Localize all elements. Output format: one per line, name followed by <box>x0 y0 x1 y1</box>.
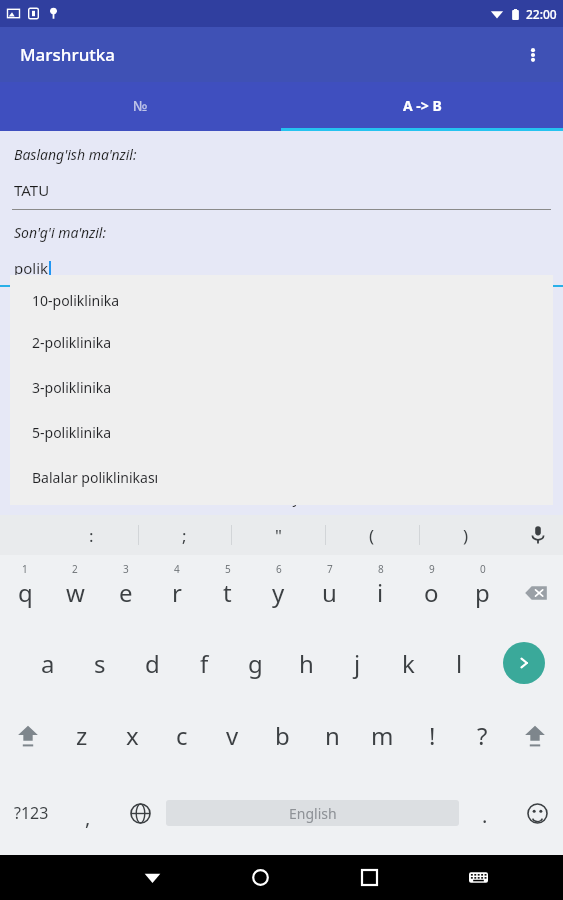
button[interactable]: d <box>126 627 178 699</box>
button[interactable]: Back <box>98 855 206 900</box>
staticText: b <box>275 719 290 752</box>
staticText: u <box>322 576 337 609</box>
staticText: ? <box>477 719 488 752</box>
staticText: x <box>126 719 139 752</box>
button[interactable]: № <box>0 82 281 128</box>
button[interactable]: f <box>178 627 230 699</box>
staticText: c <box>176 719 188 752</box>
staticText: k <box>402 647 415 680</box>
staticText: 0 <box>480 562 486 576</box>
staticText: Samanbay elatı <box>231 488 332 507</box>
button[interactable]: n <box>307 699 357 771</box>
staticText: 2 <box>72 562 78 576</box>
button[interactable]: ) <box>419 515 513 555</box>
staticText: o <box>424 576 439 609</box>
staticText: 10-poliklinika <box>32 291 120 310</box>
staticText: polik <box>14 258 49 278</box>
button[interactable]: 2 <box>50 555 100 627</box>
button[interactable]: g <box>230 627 281 699</box>
button[interactable]: A -> B <box>281 82 563 128</box>
staticText: ! <box>429 719 436 752</box>
button[interactable]: ?123 <box>0 771 62 855</box>
button[interactable]: l <box>434 627 485 699</box>
button[interactable]: ; <box>138 515 231 555</box>
button[interactable]: 4 <box>151 555 202 627</box>
staticText: : <box>89 524 94 547</box>
button[interactable]: 1 <box>0 555 50 627</box>
staticText: z <box>76 719 88 752</box>
staticText: 9 <box>429 562 435 576</box>
button[interactable]: j <box>332 627 383 699</box>
staticText: i <box>377 576 384 609</box>
button[interactable]: ! <box>407 699 457 771</box>
button[interactable]: m <box>357 699 407 771</box>
button[interactable]: 8 <box>355 555 406 627</box>
staticText: f <box>200 647 209 680</box>
button[interactable]: 10-poliklinika <box>10 281 553 320</box>
staticText: . <box>482 802 488 829</box>
button[interactable]: v <box>207 699 257 771</box>
staticText: a <box>41 647 55 680</box>
staticText: № <box>133 96 148 115</box>
button[interactable]: " <box>231 515 325 555</box>
staticText: d <box>145 647 160 680</box>
staticText: ; <box>182 524 187 547</box>
button[interactable]: x <box>107 699 157 771</box>
button[interactable]: Home <box>206 855 315 900</box>
button[interactable]: Voice input <box>513 515 563 555</box>
staticText: r <box>172 576 182 609</box>
button[interactable]: Shift <box>507 699 563 771</box>
staticText: j <box>354 647 361 680</box>
staticText: q <box>18 576 33 609</box>
staticText: n <box>325 719 340 752</box>
staticText: 2-poliklinika <box>32 333 112 352</box>
button[interactable]: ( <box>325 515 419 555</box>
button[interactable]: Change language <box>114 771 166 855</box>
staticText: g <box>248 647 263 680</box>
button[interactable]: c <box>157 699 207 771</box>
button[interactable]: 6 <box>253 555 304 627</box>
button[interactable]: a <box>22 627 74 699</box>
staticText: ( <box>369 524 375 547</box>
button[interactable]: , <box>62 771 114 855</box>
button[interactable]: English <box>166 800 459 826</box>
staticText: w <box>66 576 85 609</box>
staticText: v <box>226 719 239 752</box>
button[interactable]: h <box>281 627 332 699</box>
staticText: " <box>275 524 282 547</box>
button[interactable]: . <box>459 771 511 855</box>
button[interactable]: 3-poliklinika <box>10 365 553 410</box>
button[interactable]: Shift <box>0 699 56 771</box>
staticText: Marshrutka <box>20 43 116 66</box>
button[interactable]: Enter <box>485 627 563 699</box>
staticText: 6 <box>276 562 282 576</box>
staticText: 22:00 <box>526 6 557 22</box>
button[interactable]: 0 <box>457 555 508 627</box>
button[interactable]: 7 <box>304 555 355 627</box>
button[interactable]: Backspace <box>508 555 563 627</box>
button[interactable]: s <box>74 627 126 699</box>
button[interactable]: Emoji <box>511 771 563 855</box>
button[interactable]: ? <box>457 699 507 771</box>
staticText: Son'g'i ma'nzil: <box>14 223 107 242</box>
button[interactable]: : <box>45 515 138 555</box>
staticText: 1 <box>22 562 28 576</box>
button[interactable]: 2-poliklinika <box>10 320 553 365</box>
button[interactable]: 9 <box>406 555 457 627</box>
button[interactable]: 5-poliklinika <box>10 410 553 455</box>
button[interactable]: Recents <box>315 855 424 900</box>
button[interactable]: Keyboard <box>424 855 533 900</box>
staticText: 3-poliklinika <box>32 378 112 397</box>
staticText: ?123 <box>14 802 49 824</box>
staticText: ) <box>463 524 469 547</box>
button[interactable]: 5 <box>202 555 253 627</box>
button[interactable]: z <box>56 699 107 771</box>
button[interactable]: b <box>257 699 307 771</box>
button[interactable]: Balalar poliklinikası <box>10 455 553 500</box>
button[interactable]: 3 <box>100 555 151 627</box>
button[interactable]: k <box>383 627 434 699</box>
button[interactable]: More options <box>511 33 555 77</box>
staticText: 7 <box>327 562 333 576</box>
staticText: English <box>289 804 337 823</box>
staticText: Balalar poliklinikası <box>32 468 159 487</box>
